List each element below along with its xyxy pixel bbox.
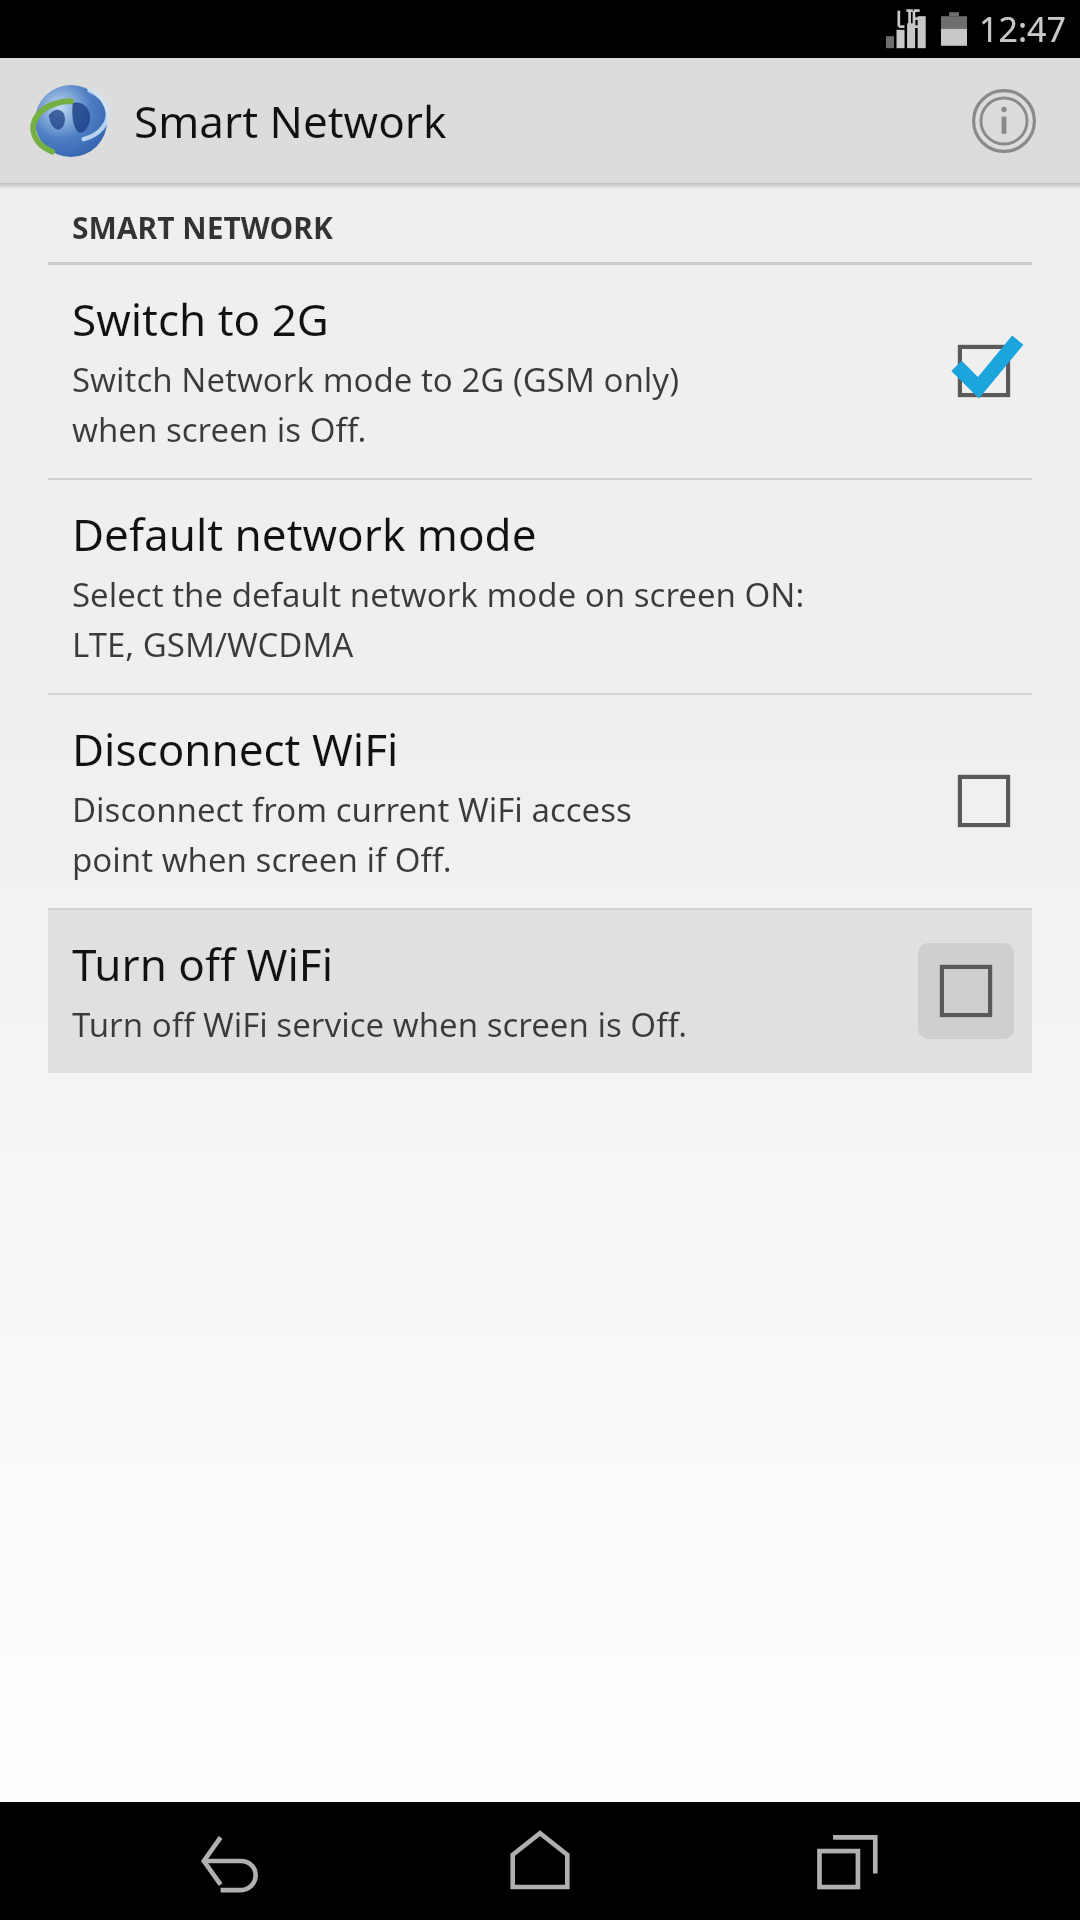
button[interactable]: Information <box>956 73 1052 169</box>
button[interactable]: Disconnect WiFi <box>0 695 1080 908</box>
staticText: SMART NETWORK <box>72 207 333 248</box>
button[interactable]: Switch to 2G <box>0 265 1080 478</box>
button[interactable]: Toggle <box>918 943 1014 1039</box>
staticText: 12:47 <box>979 6 1066 52</box>
staticText: Disconnect from current WiFi access poin… <box>72 787 632 882</box>
staticText: Switch Network mode to 2G (GSM only) whe… <box>72 357 680 452</box>
staticText: Select the default network mode on scree… <box>72 572 805 667</box>
staticText: Disconnect WiFi <box>72 719 399 779</box>
staticText: Turn off WiFi service when screen is Off… <box>72 1002 688 1047</box>
button[interactable]: Back <box>158 1802 308 1920</box>
staticText: Default network mode <box>72 504 537 564</box>
button[interactable]: Default network mode <box>0 480 1080 693</box>
button[interactable]: Toggle <box>936 753 1032 849</box>
button[interactable]: Home <box>465 1802 615 1920</box>
staticText: Smart Network <box>134 91 447 151</box>
staticText: Switch to 2G <box>72 289 329 349</box>
button[interactable]: Turn off WiFi <box>48 910 1032 1073</box>
button[interactable]: Recent apps <box>773 1802 923 1920</box>
staticText: Turn off WiFi <box>72 934 334 994</box>
button[interactable]: Toggle <box>936 323 1032 419</box>
